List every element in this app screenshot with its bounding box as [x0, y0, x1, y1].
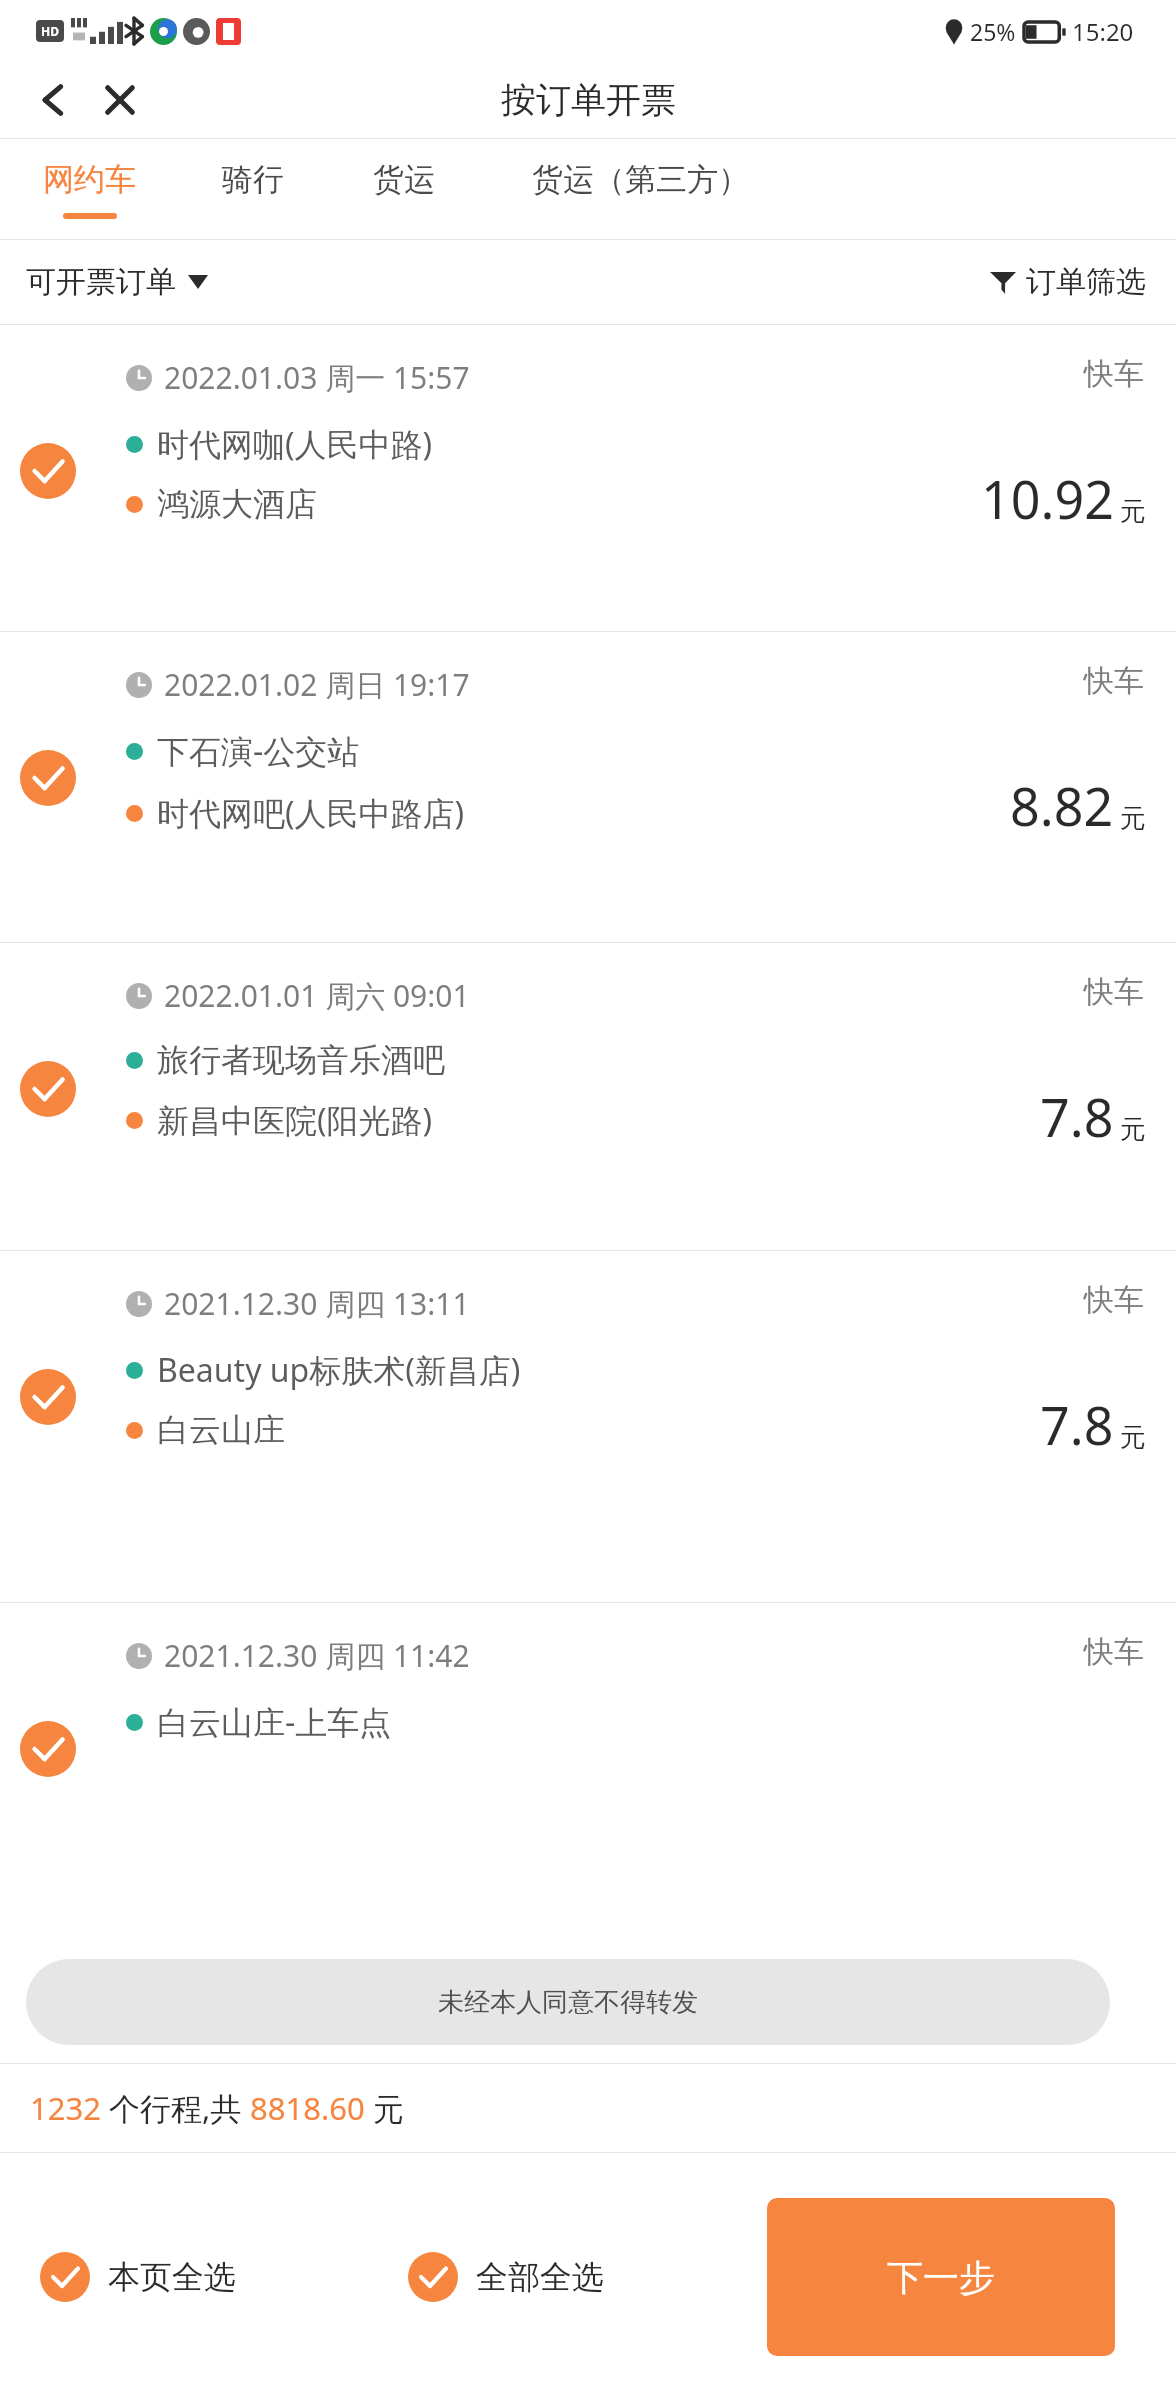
staticText: 时代网吧(人民中路店) — [157, 791, 465, 835]
button[interactable]: 下一步 — [767, 2198, 1115, 2356]
button[interactable]: 本页全选 — [40, 2252, 236, 2302]
staticText: 快车 — [1084, 1633, 1144, 1671]
staticText: 快车 — [1084, 662, 1144, 700]
staticText: 货运 — [373, 160, 435, 199]
staticText: 订单筛选 — [1026, 263, 1146, 301]
staticText: 元 — [1120, 495, 1146, 528]
staticText: 时代网咖(人民中路) — [157, 422, 433, 466]
staticText: 白云山庄-上车点 — [157, 1700, 392, 1744]
button[interactable]: Selected — [0, 1251, 1176, 1602]
staticText: 旅行者现场音乐酒吧 — [157, 1040, 445, 1080]
button[interactable]: 可开票订单 — [26, 263, 208, 301]
staticText: 下一步 — [887, 2255, 995, 2300]
other: Selected — [20, 1369, 76, 1425]
other: Selected — [20, 1061, 76, 1117]
staticText: 2022.01.02 周日 19:17 — [164, 664, 470, 705]
staticText: 未经本人同意不得转发 — [438, 1986, 698, 2019]
staticText: 元 — [1120, 1113, 1146, 1146]
staticText: HD — [41, 23, 59, 39]
staticText: 元 — [1120, 802, 1146, 835]
staticText: 全部全选 — [476, 2257, 604, 2297]
button[interactable]: Selected — [0, 943, 1176, 1250]
button[interactable]: 骑行 — [178, 139, 328, 239]
button[interactable]: Selected — [0, 325, 1176, 631]
staticText: 7.8 — [1040, 1389, 1114, 1460]
button[interactable]: Back — [26, 72, 82, 128]
staticText: 2022.01.01 周六 09:01 — [164, 975, 470, 1016]
staticText: 新昌中医院(阳光路) — [157, 1098, 433, 1142]
button[interactable]: 全部全选 — [408, 2252, 604, 2302]
staticText: 白云山庄 — [157, 1410, 285, 1450]
other: Selected — [20, 443, 76, 499]
staticText: 7.8 — [1040, 1081, 1114, 1152]
staticText: 2021.12.30 周四 11:42 — [164, 1635, 470, 1676]
staticText: 快车 — [1084, 1281, 1144, 1319]
staticText: 货运（第三方） — [532, 160, 749, 199]
staticText: 下石演-公交站 — [157, 729, 360, 773]
button[interactable]: Close — [92, 72, 148, 128]
staticText: 按订单开票 — [501, 78, 676, 122]
staticText: 元 — [1120, 1421, 1146, 1454]
staticText: 骑行 — [222, 160, 284, 199]
other: Selected — [20, 750, 76, 806]
staticText: 10.92 — [981, 463, 1114, 534]
staticText: 快车 — [1084, 973, 1144, 1011]
staticText: 元 — [365, 2087, 405, 2129]
staticText: 快车 — [1084, 355, 1144, 393]
button[interactable]: 货运 — [328, 139, 480, 239]
staticText: 15:20 — [1072, 15, 1134, 48]
staticText: 2021.12.30 周四 13:11 — [164, 1283, 470, 1324]
button[interactable]: Selected — [0, 1603, 1176, 1883]
staticText: 8.82 — [1010, 770, 1114, 841]
button[interactable]: 订单筛选 — [990, 263, 1146, 301]
button[interactable]: Selected — [0, 632, 1176, 942]
button[interactable]: 货运（第三方） — [480, 139, 800, 239]
staticText: 个行程,共 — [101, 2087, 250, 2129]
staticText: 可开票订单 — [26, 263, 176, 301]
staticText: 鸿源大酒店 — [157, 484, 317, 524]
other: Selected — [20, 1721, 76, 1777]
staticText: 本页全选 — [108, 2257, 236, 2297]
staticText: 25% — [970, 16, 1016, 47]
staticText: 2022.01.03 周一 15:57 — [164, 357, 470, 398]
staticText: 1232 — [30, 2087, 101, 2129]
staticText: Beauty up标肤术(新昌店) — [157, 1348, 521, 1392]
staticText: 8818.60 — [250, 2087, 365, 2129]
button[interactable]: 网约车 — [0, 139, 178, 239]
staticText: 网约车 — [43, 160, 136, 199]
